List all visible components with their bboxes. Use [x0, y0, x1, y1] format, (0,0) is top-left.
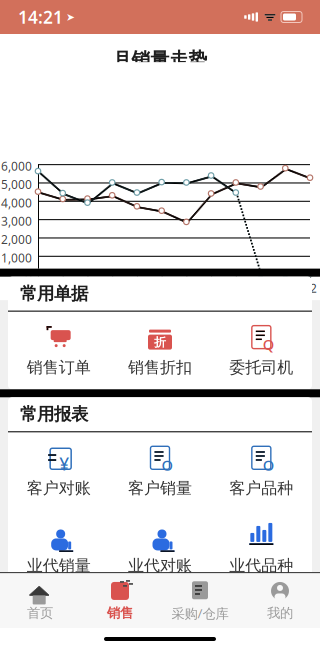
staticText: O — [263, 455, 274, 475]
staticText: 常用报表 — [20, 404, 88, 425]
staticText: 销售折扣 — [128, 358, 192, 377]
staticText: 01 — [31, 280, 45, 296]
staticText: 业代销量 — [27, 556, 91, 576]
staticText: 采购/仓库 — [171, 604, 228, 622]
staticText: 常用单据 — [20, 283, 88, 304]
button[interactable]: 业代销量 — [8, 510, 109, 588]
staticText: 6,000 — [1, 158, 32, 174]
staticText: 我的 — [267, 605, 293, 621]
staticText: 首页 — [27, 605, 53, 621]
button[interactable]: 业代对账 — [109, 510, 211, 588]
staticText: 业代对账 — [128, 556, 192, 576]
staticText: 5,000 — [1, 176, 32, 192]
button[interactable]: 销售订单 — [8, 312, 109, 389]
staticText: 客户品种 — [229, 478, 293, 498]
button[interactable]: ¥ — [8, 432, 109, 510]
button[interactable]: O — [211, 432, 312, 510]
staticText: 客户对账 — [27, 478, 91, 498]
staticText: 02 — [56, 280, 70, 296]
staticText: 销售 — [107, 605, 133, 621]
button[interactable]: 我的 — [240, 580, 320, 621]
staticText: 1,000 — [1, 250, 32, 266]
staticText: 14:21 — [18, 5, 63, 28]
button[interactable]: 折 — [109, 312, 211, 389]
staticText: 3,000 — [1, 213, 32, 229]
staticText: 折 — [154, 335, 166, 349]
staticText: 4,000 — [1, 195, 32, 211]
staticText: 0 — [25, 268, 32, 284]
staticText: 月销量走势 — [112, 48, 207, 71]
staticText: 12 — [303, 280, 317, 296]
staticText: 销售订单 — [27, 358, 91, 377]
staticText: O — [161, 455, 172, 475]
staticText: ¥ — [59, 452, 69, 475]
button[interactable]: Q — [211, 312, 312, 389]
button[interactable]: 采购/仓库 — [160, 579, 240, 622]
button[interactable]: 销售 — [80, 580, 160, 621]
staticText: ➤ — [66, 11, 75, 23]
staticText: Q — [263, 335, 274, 354]
button[interactable]: 首页 — [0, 580, 80, 621]
staticText: 业代品种 — [229, 556, 293, 576]
button[interactable]: 业代品种 — [211, 510, 312, 588]
staticText: 03 — [80, 280, 94, 296]
button[interactable]: O — [109, 432, 211, 510]
staticText: 2,000 — [1, 231, 32, 247]
staticText: 客户销量 — [128, 478, 192, 498]
staticText: 委托司机 — [229, 358, 293, 377]
